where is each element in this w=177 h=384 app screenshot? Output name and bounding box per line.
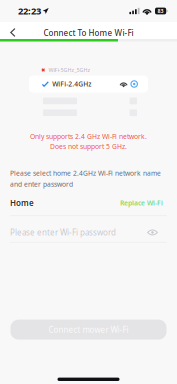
staticText: and enter password	[10, 180, 73, 189]
staticText: 22:23	[18, 5, 41, 17]
staticText: Home	[10, 197, 34, 208]
button[interactable]: Back	[0, 22, 25, 39]
staticText: Please select home 2.4GHz Wi-Fi network …	[10, 169, 161, 178]
staticText: Connect To Home Wi-Fi	[43, 28, 133, 38]
button[interactable]: Show password	[147, 229, 167, 236]
button[interactable]: Replace Wi-Fi	[120, 198, 167, 207]
button[interactable]: Connect mower Wi-Fi	[10, 320, 166, 340]
staticText: WiFi-5GHz_5GHz	[48, 66, 90, 74]
staticText: Replace Wi-Fi	[120, 198, 163, 207]
staticText: Does not support 5 GHz.	[50, 142, 127, 151]
staticText: 83	[158, 7, 164, 15]
staticText: WiFi-2.4GHz	[52, 80, 91, 88]
button[interactable]: WiFi-2.4GHz	[29, 75, 148, 92]
staticText: Please enter Wi-Fi password	[10, 227, 116, 238]
staticText: Only supports 2.4 GHz Wi-Fi network.	[30, 132, 147, 141]
staticText: Connect mower Wi-Fi	[48, 324, 128, 335]
